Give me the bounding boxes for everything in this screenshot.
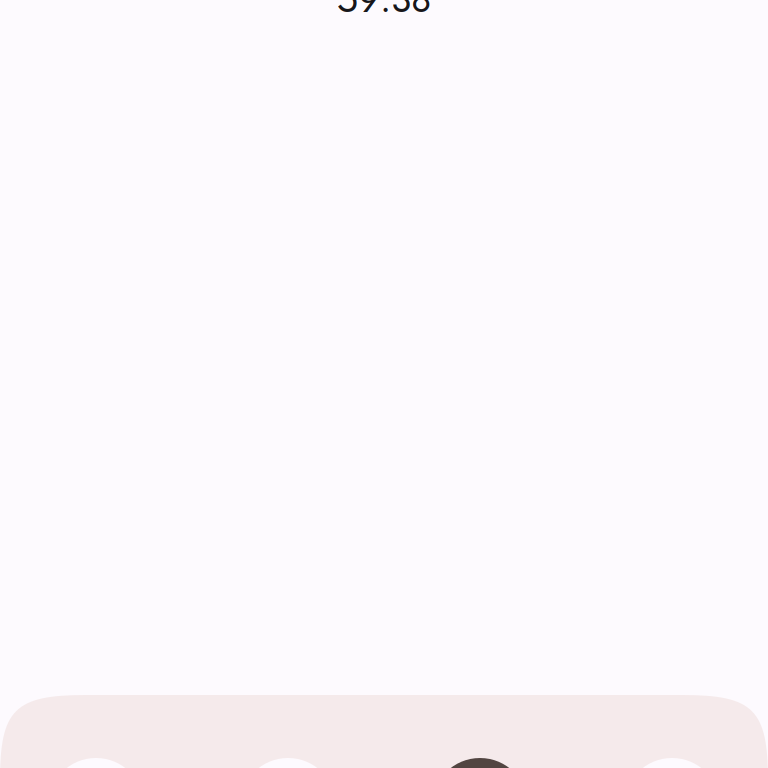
button[interactable]: Timer xyxy=(384,758,576,768)
button[interactable]: Profile xyxy=(576,758,768,768)
button[interactable]: Home xyxy=(0,758,192,768)
staticText: 59:38 xyxy=(337,0,431,26)
button[interactable]: Sessions xyxy=(192,758,384,768)
